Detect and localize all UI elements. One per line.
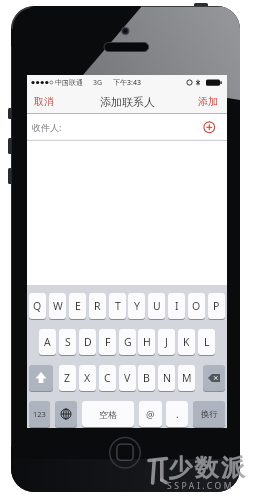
staticText: Y <box>134 299 140 313</box>
staticText: N <box>163 371 171 385</box>
button[interactable]: R <box>89 293 106 320</box>
button[interactable]: C <box>99 365 116 392</box>
button[interactable]: U <box>148 293 165 320</box>
button[interactable]: O <box>188 293 205 320</box>
staticText: 少数派 <box>168 453 248 483</box>
staticText: D <box>84 335 92 349</box>
staticText: R <box>94 299 101 313</box>
staticText: C <box>104 371 111 385</box>
staticText: Q <box>33 299 42 313</box>
button[interactable]: F <box>99 329 116 356</box>
staticText: 123 <box>33 409 46 419</box>
button[interactable]: H <box>138 329 155 356</box>
staticText: X <box>84 371 91 385</box>
button[interactable]: Q <box>29 293 46 320</box>
staticText: 收件人: <box>32 121 62 133</box>
staticText: T <box>115 299 121 313</box>
staticText: O <box>192 299 201 313</box>
button[interactable] <box>199 117 219 137</box>
button[interactable]: D <box>79 329 96 356</box>
button[interactable]: 123 <box>29 401 50 428</box>
staticText: K <box>183 335 190 349</box>
staticText: W <box>53 299 63 313</box>
button[interactable]: W <box>49 293 66 320</box>
button[interactable]: 空格 <box>82 401 134 428</box>
staticText: 换行 <box>201 409 218 420</box>
button[interactable]: M <box>178 365 195 392</box>
button[interactable]: J <box>158 329 175 356</box>
button[interactable]: Y <box>128 293 145 320</box>
button[interactable]: E <box>69 293 86 320</box>
staticText: Z <box>64 371 71 385</box>
button[interactable]: 添加 <box>27 95 218 108</box>
button[interactable]: L <box>198 329 215 356</box>
staticText: 空格 <box>99 409 117 420</box>
button[interactable]: 取消 <box>34 95 54 108</box>
staticText: E <box>75 299 81 313</box>
button[interactable] <box>203 365 225 392</box>
staticText: I <box>175 299 179 313</box>
button[interactable]: 换行 <box>193 401 225 428</box>
staticText: M <box>182 371 192 385</box>
button[interactable]: I <box>168 293 185 320</box>
staticText: . <box>176 407 179 421</box>
staticText: P <box>213 299 220 313</box>
staticText: 取消 <box>34 95 54 108</box>
button[interactable]: A <box>39 329 56 356</box>
staticText: G <box>124 335 132 349</box>
staticText: SSPAI.COM <box>167 480 235 492</box>
staticText: 添加 <box>198 95 218 108</box>
button[interactable]: N <box>158 365 175 392</box>
staticText: 下午3:43 <box>113 78 141 88</box>
button[interactable]: G <box>119 329 136 356</box>
button[interactable]: Z <box>59 365 76 392</box>
button[interactable]: V <box>119 365 136 392</box>
staticText: 3G <box>93 78 103 88</box>
staticText: U <box>153 299 161 313</box>
staticText: A <box>44 335 51 349</box>
button[interactable]: K <box>178 329 195 356</box>
staticText: 中国联通 <box>55 78 83 87</box>
staticText: B <box>143 371 150 385</box>
button[interactable]: . <box>166 401 188 428</box>
staticText: S <box>65 335 71 349</box>
staticText: H <box>143 335 151 349</box>
staticText: 添加联系人 <box>100 95 155 109</box>
staticText: J <box>165 335 168 349</box>
staticText: V <box>124 371 131 385</box>
button[interactable]: X <box>79 365 96 392</box>
button[interactable] <box>55 401 77 428</box>
staticText: F <box>105 335 111 349</box>
button[interactable]: @ <box>139 401 162 428</box>
button[interactable]: P <box>208 293 225 320</box>
staticText: L <box>204 335 210 349</box>
staticText: @ <box>146 408 155 421</box>
button[interactable] <box>29 365 53 392</box>
button[interactable]: B <box>138 365 155 392</box>
button[interactable]: S <box>59 329 76 356</box>
button[interactable]: T <box>109 293 126 320</box>
